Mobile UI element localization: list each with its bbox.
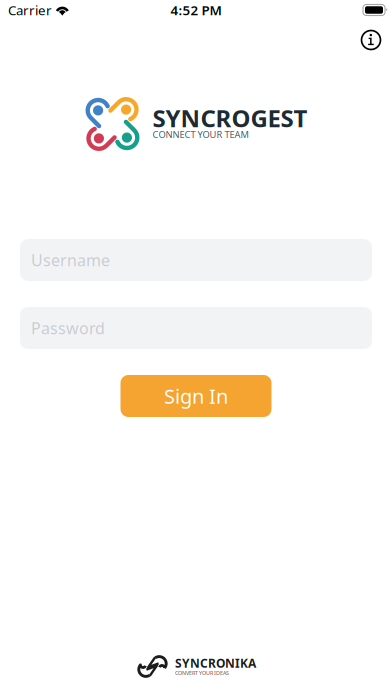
- button[interactable]: Info: [351, 20, 391, 60]
- staticText: Carrier: [8, 1, 52, 19]
- staticText: 4:52 PM: [170, 1, 221, 19]
- staticText: Username: [31, 249, 110, 271]
- button[interactable]: Sign In: [120, 375, 271, 417]
- staticText: Password: [31, 317, 105, 339]
- staticText: CONNECT YOUR TEAM: [152, 128, 248, 141]
- staticText: Sign In: [164, 383, 228, 409]
- staticText: SYNCRONIKA: [175, 655, 256, 671]
- staticText: SYNCROGEST: [152, 102, 307, 134]
- staticText: CONVERT YOUR IDEAS: [175, 669, 229, 677]
